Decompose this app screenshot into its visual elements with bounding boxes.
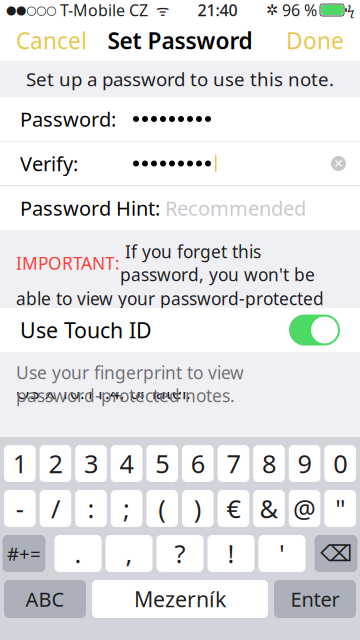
button[interactable]: 0 [324, 445, 356, 482]
staticText: ; [123, 492, 130, 525]
staticText: 5 [155, 447, 169, 480]
button[interactable]: @ [289, 490, 320, 527]
button[interactable]: 7 [218, 445, 249, 482]
staticText: / [51, 492, 60, 525]
staticText: If you forget this password, you won't b… [120, 240, 315, 286]
staticText: Use your fingerprint to view password-pr… [16, 361, 244, 407]
staticText: Mezerník [134, 585, 226, 613]
button[interactable]: ! [207, 535, 254, 572]
button[interactable]: Password Hint: [0, 186, 360, 230]
button[interactable]: Mezerník [92, 580, 268, 618]
staticText: . [74, 537, 81, 570]
staticText: 7 [226, 447, 240, 480]
staticText: able to view your password-protected not… [16, 287, 324, 333]
staticText: Set up a password to use this note. [26, 67, 334, 91]
staticText: ⌫ [320, 541, 352, 566]
staticText: Set Password [107, 25, 252, 55]
button[interactable]: ; [111, 490, 142, 527]
button[interactable]: ABC [4, 580, 86, 618]
staticText: & [259, 492, 278, 525]
button[interactable]: 2 [40, 445, 71, 482]
button[interactable]: - [4, 490, 36, 527]
button[interactable]: Use Touch ID [0, 308, 360, 352]
staticText: ) [194, 492, 202, 525]
button[interactable]: , [105, 535, 152, 572]
staticText: ✲ [266, 2, 278, 18]
button[interactable]: Enter [274, 580, 356, 618]
staticText: @ [293, 492, 316, 525]
staticText: Done [286, 25, 344, 55]
staticText: , [125, 537, 132, 570]
button[interactable]: 8 [253, 445, 285, 482]
staticText: IMPORTANT: [16, 251, 120, 274]
button[interactable]: 9 [289, 445, 320, 482]
button[interactable]: ' [258, 535, 305, 572]
staticText: Use Touch ID [20, 316, 152, 344]
button[interactable]: Delete [314, 535, 357, 572]
staticText: 3 [84, 447, 98, 480]
staticText: ✕ [333, 157, 343, 170]
staticText: 96 % [278, 0, 317, 21]
button[interactable]: ( [146, 490, 178, 527]
button[interactable]: . [54, 535, 101, 572]
staticText: #+= [7, 541, 41, 566]
button[interactable]: Password: [0, 97, 360, 141]
staticText: T-Mobile CZ [56, 0, 148, 21]
button[interactable]: Cancel [4, 20, 99, 61]
button[interactable]: / [40, 490, 71, 527]
button[interactable]: " [324, 490, 356, 527]
button[interactable]: #+= [2, 535, 45, 572]
staticText: ABC [25, 586, 64, 612]
button[interactable]: ) [182, 490, 214, 527]
button[interactable]: ? [156, 535, 203, 572]
staticText: 4 [120, 447, 134, 480]
staticText: - [16, 492, 24, 525]
staticText: Verify: [20, 150, 78, 177]
button[interactable]: Done [274, 20, 356, 61]
button[interactable]: 3 [75, 445, 107, 482]
button[interactable]: 6 [182, 445, 214, 482]
staticText: ' [279, 537, 285, 570]
staticText: 9 [298, 447, 312, 480]
staticText: 2 [48, 447, 62, 480]
staticText: Recommended [160, 195, 306, 221]
staticText: 6 [191, 447, 205, 480]
staticText: € [226, 492, 240, 525]
staticText: 8 [262, 447, 276, 480]
staticText: Password Hint: [20, 195, 160, 221]
staticText: 0 [333, 447, 347, 480]
staticText: 1 [13, 447, 27, 480]
button[interactable]: 4 [111, 445, 142, 482]
staticText: OS X 10.11.4, or later. [16, 381, 191, 404]
staticText: ( [158, 492, 166, 525]
staticText: Cancel [16, 25, 87, 55]
staticText: Enter [290, 586, 339, 612]
staticText: ! [227, 537, 234, 570]
button[interactable]: & [253, 490, 285, 527]
staticText: ᯤ [148, 0, 169, 20]
staticText: Password: [20, 106, 116, 132]
staticText: " [335, 492, 345, 525]
staticText: ? [174, 537, 185, 570]
button[interactable]: 5 [146, 445, 178, 482]
button[interactable]: : [75, 490, 107, 527]
button[interactable]: 1 [4, 445, 36, 482]
staticText: 21:40 [197, 0, 237, 21]
staticText: protected notes are only visible on devi… [16, 334, 297, 380]
staticText: ϟ [347, 1, 354, 19]
staticText: : [87, 492, 94, 525]
button[interactable]: Verify: [0, 141, 360, 185]
button[interactable]: € [218, 490, 249, 527]
staticText: ●●○○○ [6, 3, 56, 17]
